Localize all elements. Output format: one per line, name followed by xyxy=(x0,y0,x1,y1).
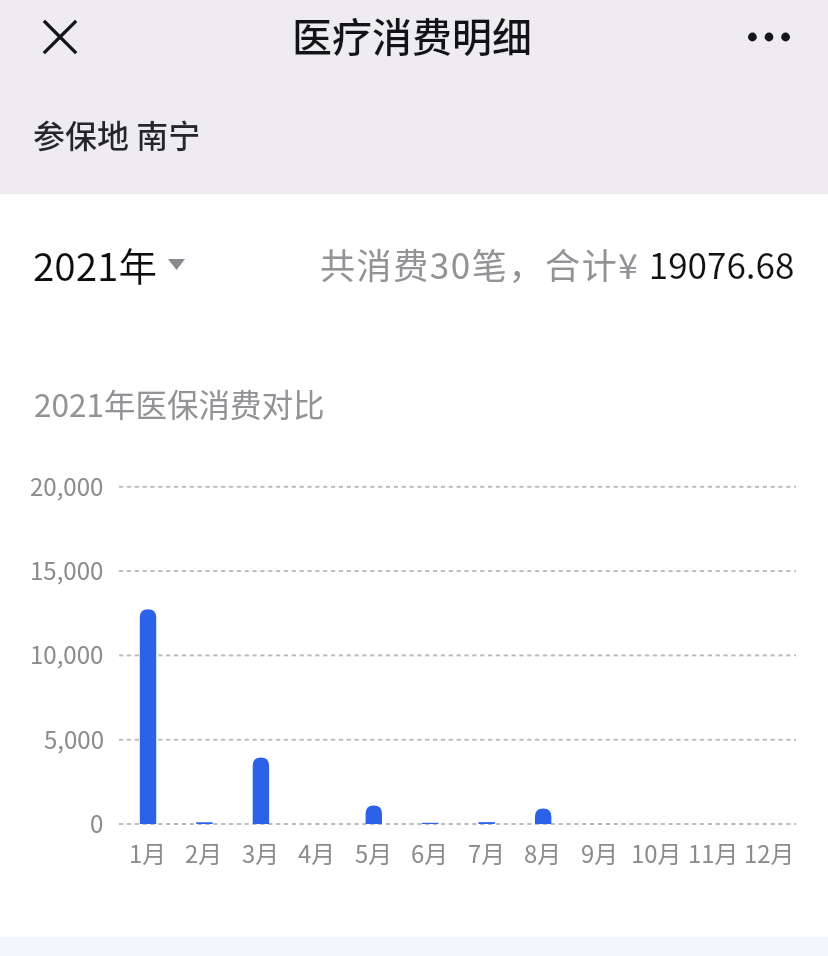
staticText: 20,000 xyxy=(30,468,104,502)
staticText: 参保地 南宁 xyxy=(33,111,201,157)
staticText: 医疗消费明细 xyxy=(292,6,532,64)
staticText: 3月 xyxy=(242,835,280,867)
staticText: 4月 xyxy=(298,835,336,867)
staticText: 10月 xyxy=(631,835,682,867)
staticText: 2021年医保消费对比 xyxy=(34,380,325,426)
staticText: 12月 xyxy=(744,835,795,867)
staticText: 10,000 xyxy=(30,636,104,670)
staticText: 0 xyxy=(90,805,104,839)
staticText: 6月 xyxy=(411,835,449,867)
staticText: 15,000 xyxy=(30,552,104,586)
staticText: 2021年 xyxy=(33,236,157,292)
staticText: 1月 xyxy=(129,835,167,867)
staticText: 8月 xyxy=(524,835,562,867)
button[interactable]: 2021年 xyxy=(33,236,185,292)
staticText: 9月 xyxy=(581,835,619,867)
button[interactable]: Close xyxy=(20,1,100,73)
staticText: 共消费30笔，合计¥ 19076.68 xyxy=(320,238,795,289)
staticText: 2月 xyxy=(185,835,223,867)
staticText: 5,000 xyxy=(44,721,104,755)
staticText: 11月 xyxy=(688,835,739,867)
staticText: 5月 xyxy=(355,835,393,867)
button[interactable]: More options xyxy=(729,1,809,73)
staticText: 7月 xyxy=(468,835,506,867)
